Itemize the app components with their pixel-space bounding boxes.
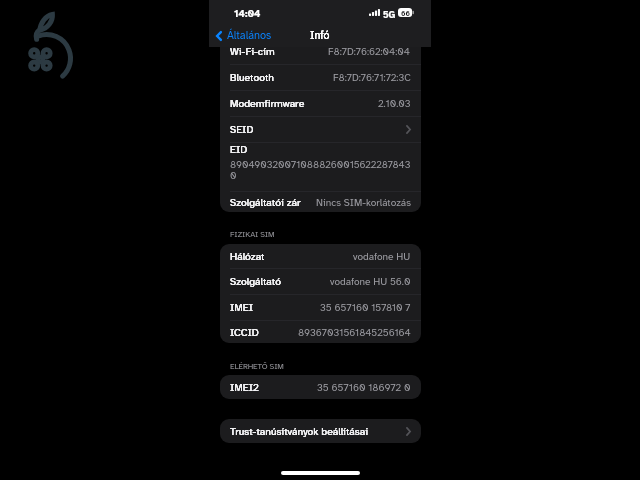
staticText: Szolgáltatói zár: [230, 196, 301, 209]
staticText: Bluetooth: [230, 71, 274, 84]
staticText: SEID: [230, 123, 254, 136]
button[interactable]: Wi-Fi-cím: [220, 47, 421, 64]
button[interactable]: Hálózat: [220, 244, 421, 268]
staticText: 2.10.03: [378, 97, 411, 110]
staticText: ICCID: [230, 326, 259, 339]
staticText: Általános: [227, 29, 272, 43]
staticText: F8:7D:76:62:04:04: [328, 47, 411, 58]
button[interactable]: IMEI: [220, 295, 421, 320]
staticText: 14:04: [234, 7, 261, 20]
button[interactable]: EID: [220, 143, 421, 191]
staticText: Modemfirmware: [230, 97, 305, 110]
staticText: ICCID: [230, 326, 259, 339]
button[interactable]: Back: [209, 25, 278, 46]
staticText: Infó: [310, 29, 330, 42]
staticText: Szolgáltatói zár: [230, 196, 301, 209]
staticText: FIZIKAI SIM: [230, 229, 275, 239]
button[interactable]: IMEI2: [220, 375, 421, 399]
button[interactable]: Bluetooth: [220, 65, 421, 90]
staticText: 89049032007108882600156222878430: [230, 158, 413, 181]
staticText: IMEI: [230, 301, 254, 314]
staticText: 89367031561845256164: [298, 326, 411, 339]
other: Open: [406, 125, 411, 134]
staticText: Modemfirmware: [230, 97, 305, 110]
staticText: vodafone HU 56.0: [330, 275, 411, 288]
button[interactable]: Szolgáltató: [220, 269, 421, 294]
staticText: SEID: [230, 123, 254, 136]
staticText: IMEI2: [230, 381, 259, 394]
staticText: Hálózat: [230, 250, 265, 263]
button[interactable]: SEID: [220, 117, 421, 142]
button[interactable]: ICCID: [220, 321, 421, 343]
other: Apple Command logo: [0, 0, 100, 100]
staticText: 66: [401, 9, 411, 18]
staticText: IMEI: [230, 301, 254, 314]
staticText: Infó: [310, 29, 330, 42]
staticText: 35 657160 157810 7: [320, 301, 411, 314]
staticText: Hálózat: [230, 250, 265, 263]
staticText: Szolgáltató: [230, 275, 281, 288]
staticText: Wi-Fi-cím: [230, 47, 275, 58]
button[interactable]: Szolgáltatói zár: [220, 192, 421, 212]
button[interactable]: Trust-tanúsítványok beállításai: [220, 419, 421, 443]
staticText: EID: [230, 143, 248, 156]
other: Back: [216, 31, 222, 41]
other: Open: [406, 427, 411, 436]
staticText: F8:7D:76:71:72:3C: [333, 71, 411, 84]
staticText: 5G: [383, 9, 396, 20]
staticText: Szolgáltató: [230, 275, 281, 288]
button[interactable]: Modemfirmware: [220, 91, 421, 116]
staticText: 35 657160 186972 0: [317, 381, 411, 394]
staticText: Wi-Fi-cím: [230, 47, 275, 58]
staticText: Bluetooth: [230, 71, 274, 84]
staticText: ELÉRHETŐ SIM: [230, 361, 284, 371]
staticText: EID: [230, 143, 248, 156]
staticText: Trust-tanúsítványok beállításai: [230, 425, 369, 438]
staticText: Trust-tanúsítványok beállításai: [230, 425, 369, 438]
staticText: Nincs SIM-korlátozás: [316, 196, 411, 209]
staticText: IMEI2: [230, 381, 259, 394]
staticText: vodafone HU: [353, 250, 411, 263]
